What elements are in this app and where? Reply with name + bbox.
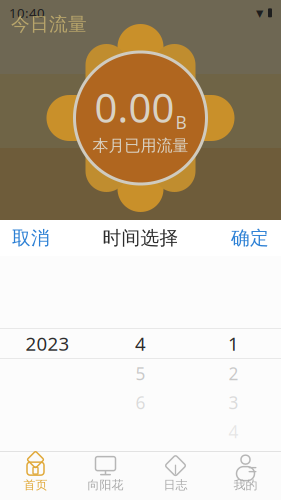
button[interactable]: 日志 xyxy=(140,452,210,496)
button[interactable]: 取消 xyxy=(0,217,62,258)
staticText: 我的 xyxy=(233,478,257,492)
staticText: 4 xyxy=(228,420,238,443)
staticText: 4 xyxy=(135,331,146,356)
staticText: ▾ xyxy=(256,4,263,21)
staticText: 取消 xyxy=(12,226,50,249)
staticText: 2023 xyxy=(25,331,69,356)
staticText: B xyxy=(175,111,186,134)
button[interactable]: 向阳花 xyxy=(70,452,140,496)
staticText: 首页 xyxy=(23,478,47,492)
staticText: 本月已用流量 xyxy=(92,136,188,155)
staticText: 1 xyxy=(228,331,239,356)
staticText: 10:40 xyxy=(9,4,45,22)
staticText: 确定 xyxy=(231,226,269,249)
staticText: 0.00 xyxy=(94,81,174,134)
staticText: 5 xyxy=(135,362,145,385)
staticText: 时间选择 xyxy=(102,226,178,249)
staticText: 向阳花 xyxy=(87,478,123,492)
staticText: 6 xyxy=(135,391,145,414)
button[interactable]: 首页 xyxy=(0,452,70,496)
button[interactable]: 我的 xyxy=(210,452,280,496)
staticText: 今日流量 xyxy=(11,13,87,36)
button[interactable]: 确定 xyxy=(219,217,281,258)
staticText: 3 xyxy=(228,391,238,414)
staticText: 日志 xyxy=(163,478,187,492)
staticText: 2 xyxy=(228,362,238,385)
